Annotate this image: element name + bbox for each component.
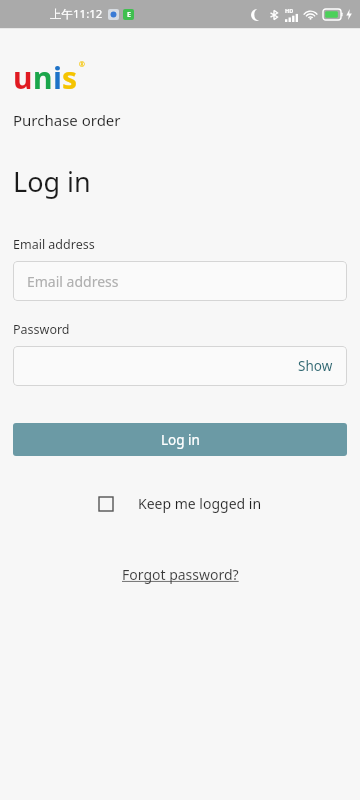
staticText: Keep me logged in [138,494,262,513]
staticText: 上午11:12 [50,6,103,22]
staticText: E [127,10,131,20]
staticText: i [53,57,62,98]
button[interactable]: Forgot password? [114,561,247,588]
staticText: HD [285,7,294,14]
button[interactable] [13,346,347,386]
staticText: n [33,57,53,98]
staticText: Show [298,357,333,375]
staticText: Password [13,321,70,338]
button[interactable]: Keep me logged in [93,490,268,517]
button[interactable]: Email address [13,261,347,301]
staticText: Email address [27,272,119,291]
staticText: s [62,57,78,98]
staticText: Email address [13,236,95,253]
staticText: u [13,57,33,98]
button[interactable]: Show [284,349,347,383]
staticText: Log in [161,431,200,449]
staticText: Purchase order [13,110,121,130]
staticText: Forgot password? [122,565,239,584]
button[interactable]: Log in [13,423,347,456]
staticText: ® [79,60,85,70]
staticText: Log in [13,163,91,200]
